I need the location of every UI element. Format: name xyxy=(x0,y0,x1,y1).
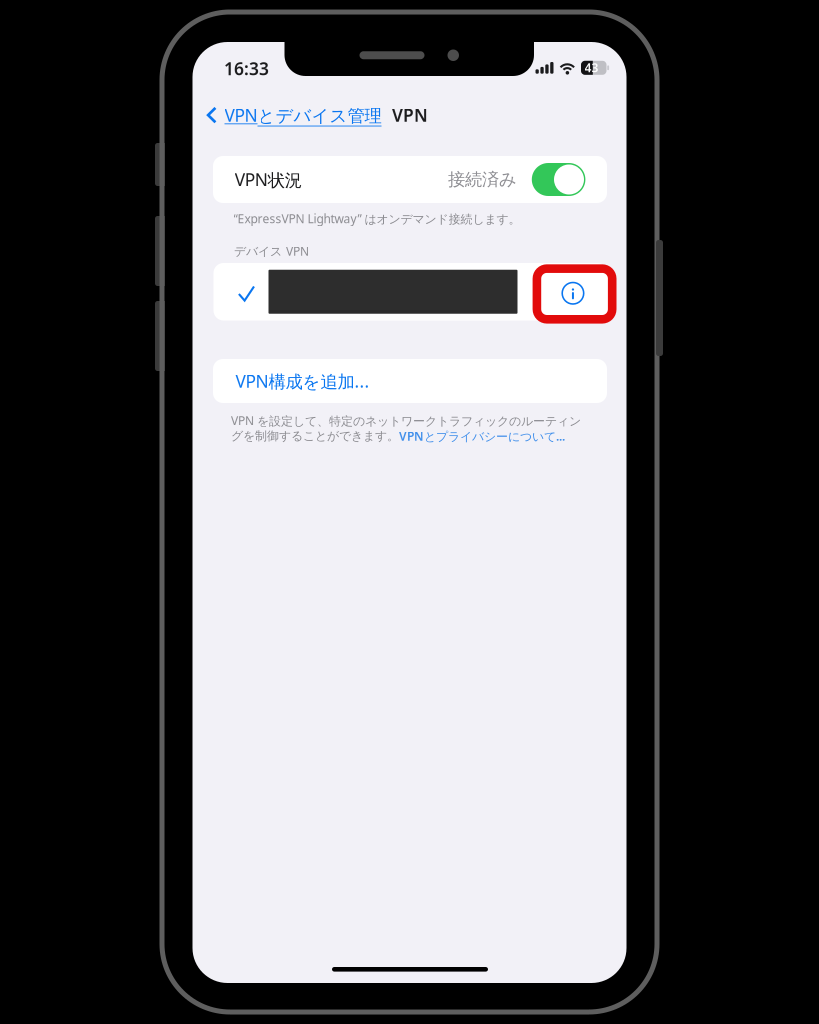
staticText: 43 xyxy=(585,59,599,75)
staticText: 接続済み xyxy=(448,169,517,190)
staticText: グを制御することができます。 xyxy=(231,429,399,443)
button[interactable]: VPN構成を追加... xyxy=(213,359,607,403)
staticText: VPN xyxy=(392,103,428,126)
staticText: VPN構成を追加... xyxy=(235,369,369,392)
staticText: VPN を設定して、特定のネットワークトラフィックのルーティン xyxy=(231,412,581,428)
staticText: VPNとデバイス管理 xyxy=(224,103,381,126)
staticText: デバイス VPN xyxy=(234,243,309,259)
button[interactable]: 情報 xyxy=(533,264,616,323)
button[interactable]: VPNとデバイス管理 xyxy=(206,101,391,129)
staticText: 16:33 xyxy=(224,57,269,80)
staticText: “ExpressVPN Lightway” はオンデマンド接続します。 xyxy=(233,210,520,226)
staticText: VPNとプライバシーについて... xyxy=(399,428,565,444)
staticText: VPN状況 xyxy=(235,168,302,191)
